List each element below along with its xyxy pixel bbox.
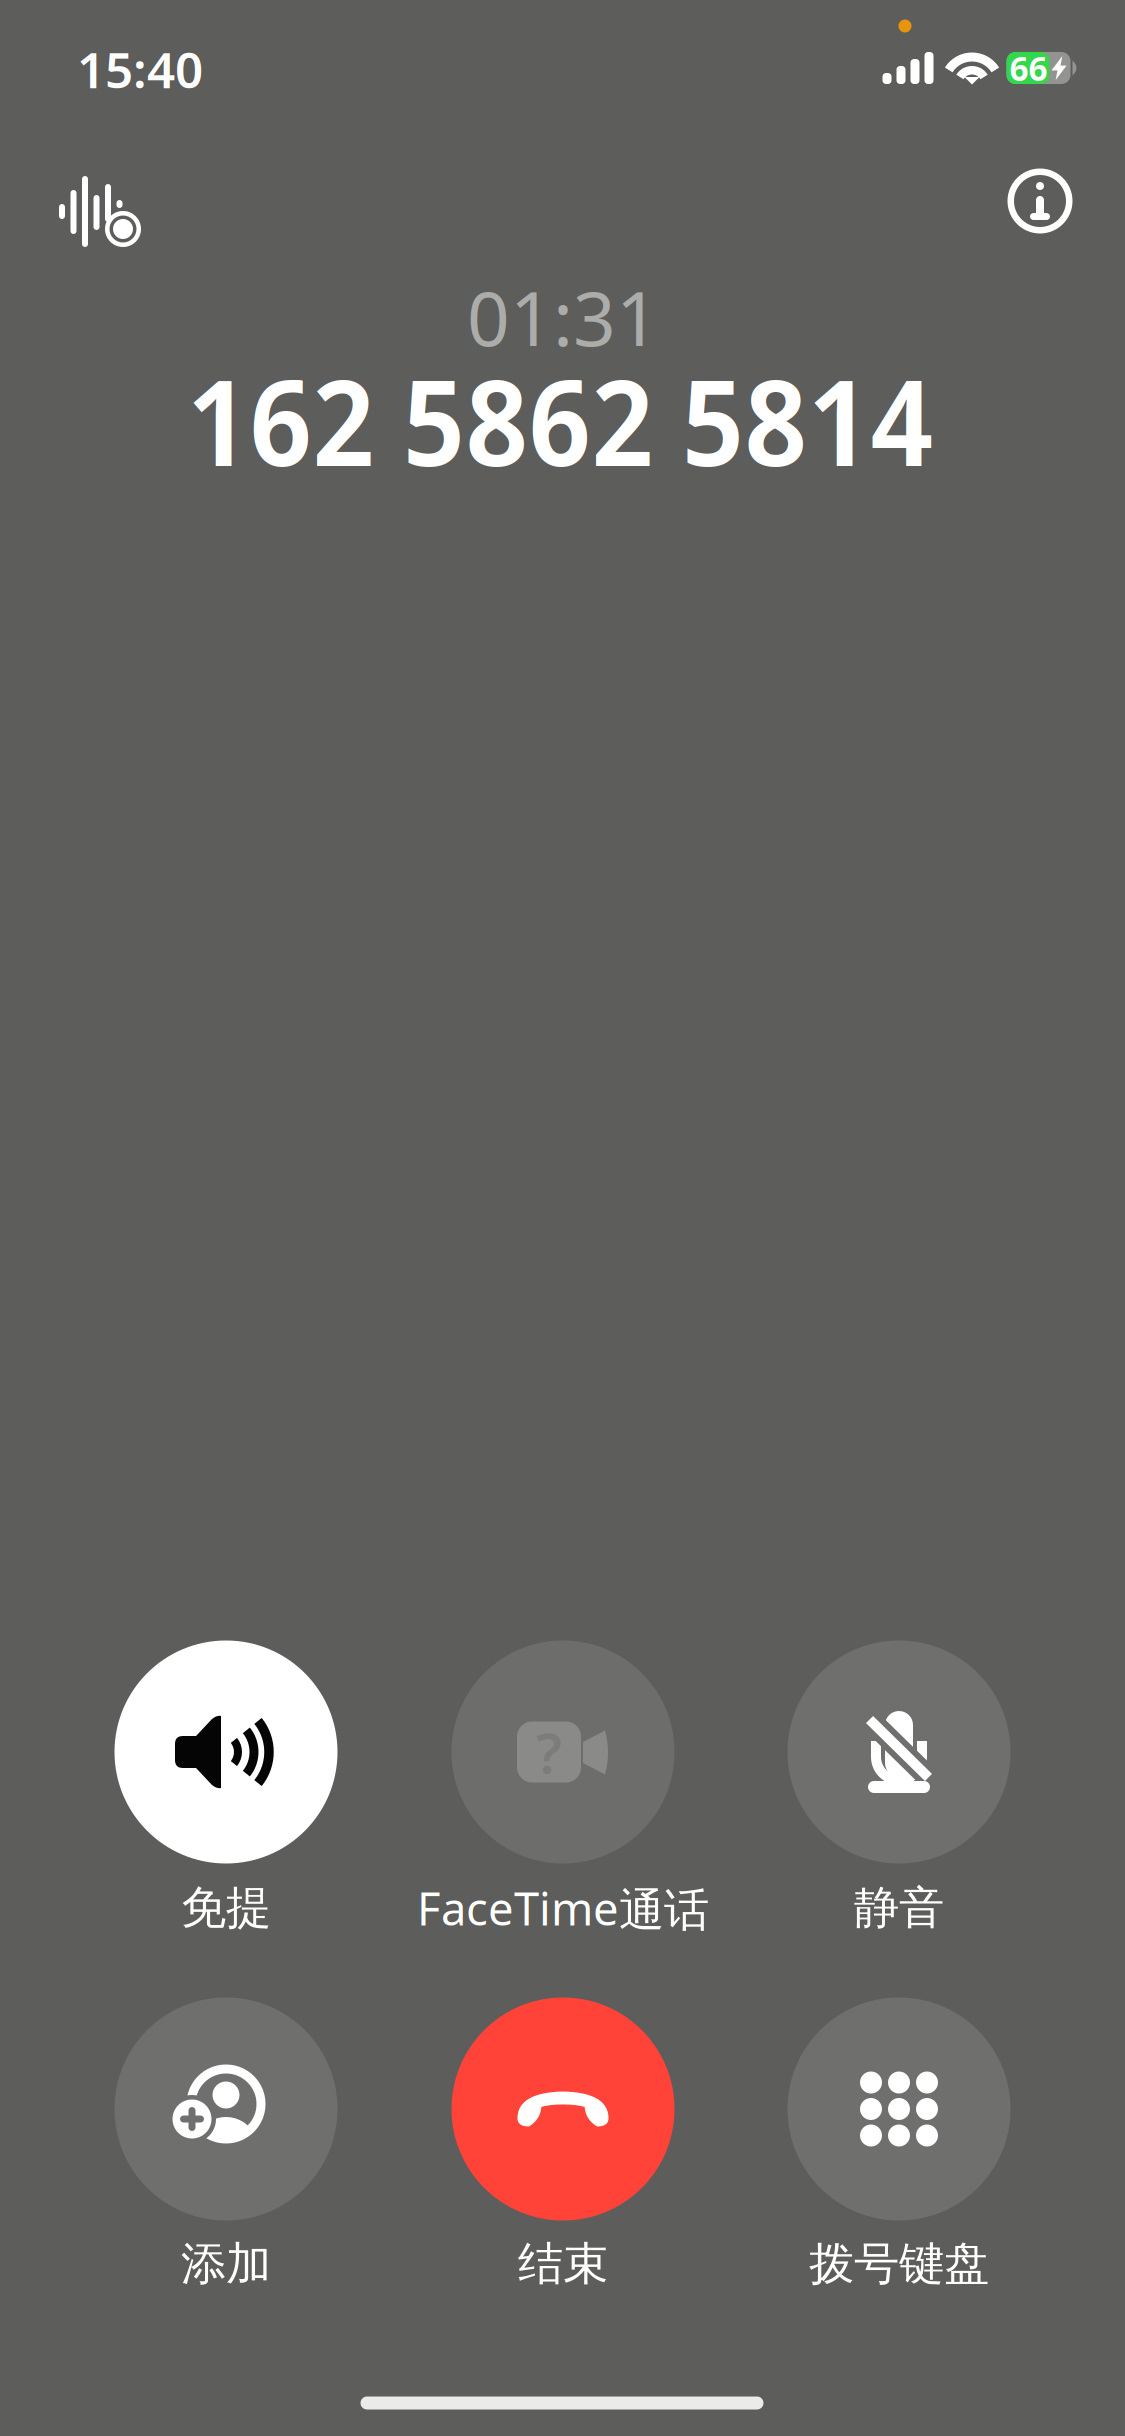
button[interactable]: End call xyxy=(395,1997,731,2307)
button[interactable]: Call info xyxy=(980,141,1100,261)
staticText: 免提 xyxy=(181,1880,271,1936)
button[interactable]: Keypad xyxy=(731,1997,1067,2307)
button[interactable]: Add call xyxy=(58,1997,394,2307)
staticText: 66 xyxy=(1009,46,1047,90)
button[interactable]: Mute xyxy=(731,1640,1067,1952)
button[interactable]: Call recording xyxy=(30,147,170,277)
staticText: 15:40 xyxy=(77,36,203,102)
staticText: 162 5862 5814 xyxy=(186,339,933,501)
staticText: 01:31 xyxy=(467,267,659,367)
staticText: 静音 xyxy=(854,1880,944,1936)
staticText: ? xyxy=(536,1715,562,1789)
staticText: 添加 xyxy=(181,2236,271,2292)
staticText: FaceTime通话 xyxy=(417,1878,709,1938)
button[interactable]: FaceTime xyxy=(395,1640,731,1952)
button[interactable]: Speaker xyxy=(58,1640,394,1952)
staticText: 拨号键盘 xyxy=(809,2236,989,2292)
staticText: 结束 xyxy=(518,2236,608,2292)
